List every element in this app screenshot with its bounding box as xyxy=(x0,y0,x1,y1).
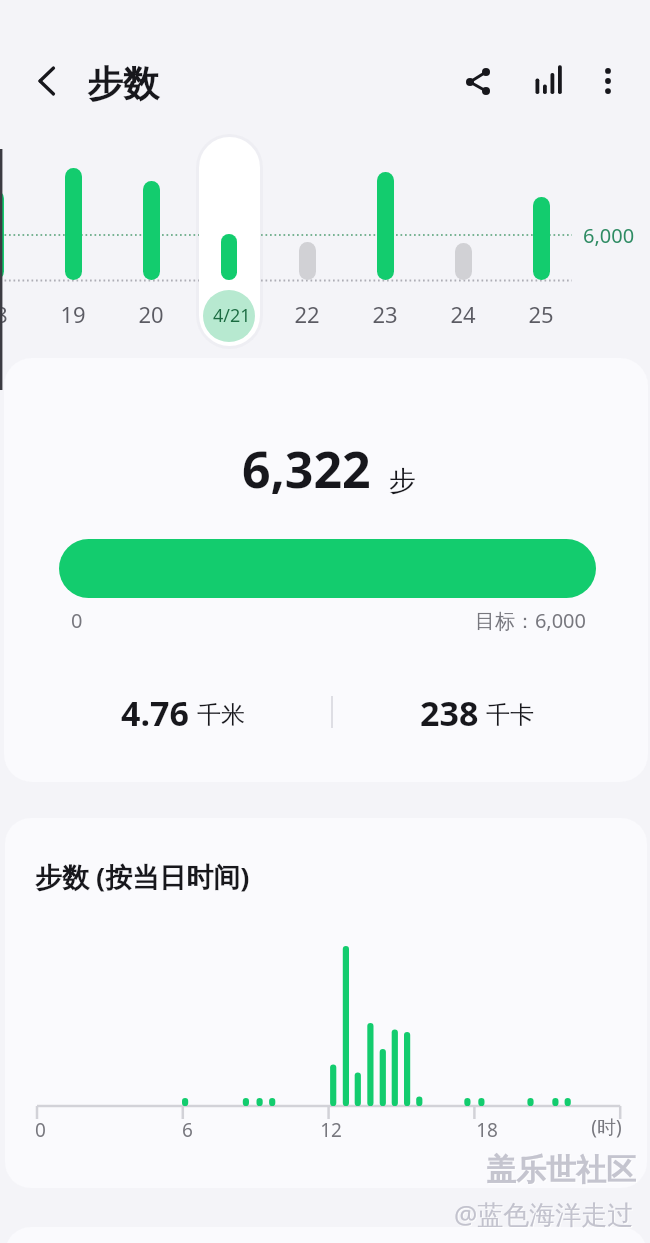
staticText: 千卡 xyxy=(486,700,534,730)
button[interactable]: 6,322 xyxy=(4,358,648,782)
button[interactable]: 23 xyxy=(345,299,425,329)
staticText: 20 xyxy=(138,299,164,329)
staticText: 0 xyxy=(71,607,83,634)
button[interactable]: Statistics xyxy=(521,51,577,107)
staticText: 25 xyxy=(528,299,554,329)
staticText: 6,000 xyxy=(583,222,635,249)
staticText: 千米 xyxy=(197,700,245,730)
button[interactable]: Back xyxy=(20,53,76,109)
button[interactable]: 4/21 xyxy=(203,290,255,342)
button[interactable]: 25 xyxy=(501,299,581,329)
staticText: 24 xyxy=(450,299,476,329)
staticText: 步 xyxy=(389,464,416,498)
staticText: 盖乐世社区 xyxy=(487,1152,637,1190)
button[interactable]: 18 xyxy=(0,299,35,329)
staticText: 238 xyxy=(420,690,479,736)
staticText: 12 xyxy=(320,1117,342,1143)
staticText: 6,322 xyxy=(242,435,371,503)
button[interactable]: 24 xyxy=(423,299,503,329)
staticText: (时) xyxy=(591,1114,622,1140)
button[interactable]: 20 xyxy=(111,299,191,329)
button[interactable]: More options xyxy=(580,53,636,109)
staticText: 盖乐世社区 xyxy=(486,1151,636,1189)
staticText: 步数 xyxy=(87,61,159,106)
button[interactable]: 19 xyxy=(33,299,113,329)
staticText: 18 xyxy=(476,1117,498,1143)
staticText: @蓝色海洋走过 xyxy=(454,1196,634,1232)
staticText: 6 xyxy=(182,1117,193,1143)
staticText: 步数 (按当日时间) xyxy=(35,858,250,895)
staticText: 19 xyxy=(60,299,86,329)
button[interactable]: Share xyxy=(450,53,506,109)
staticText: 4/21 xyxy=(213,303,251,328)
staticText: 22 xyxy=(294,299,320,329)
button[interactable] xyxy=(199,137,260,346)
staticText: 4.76 xyxy=(121,690,189,736)
staticText: @蓝色海洋走过 xyxy=(455,1197,635,1233)
staticText: 目标：6,000 xyxy=(400,607,586,634)
staticText: 0 xyxy=(35,1117,46,1143)
staticText: 18 xyxy=(0,299,8,329)
button[interactable]: 22 xyxy=(267,299,347,329)
staticText: 23 xyxy=(372,299,398,329)
